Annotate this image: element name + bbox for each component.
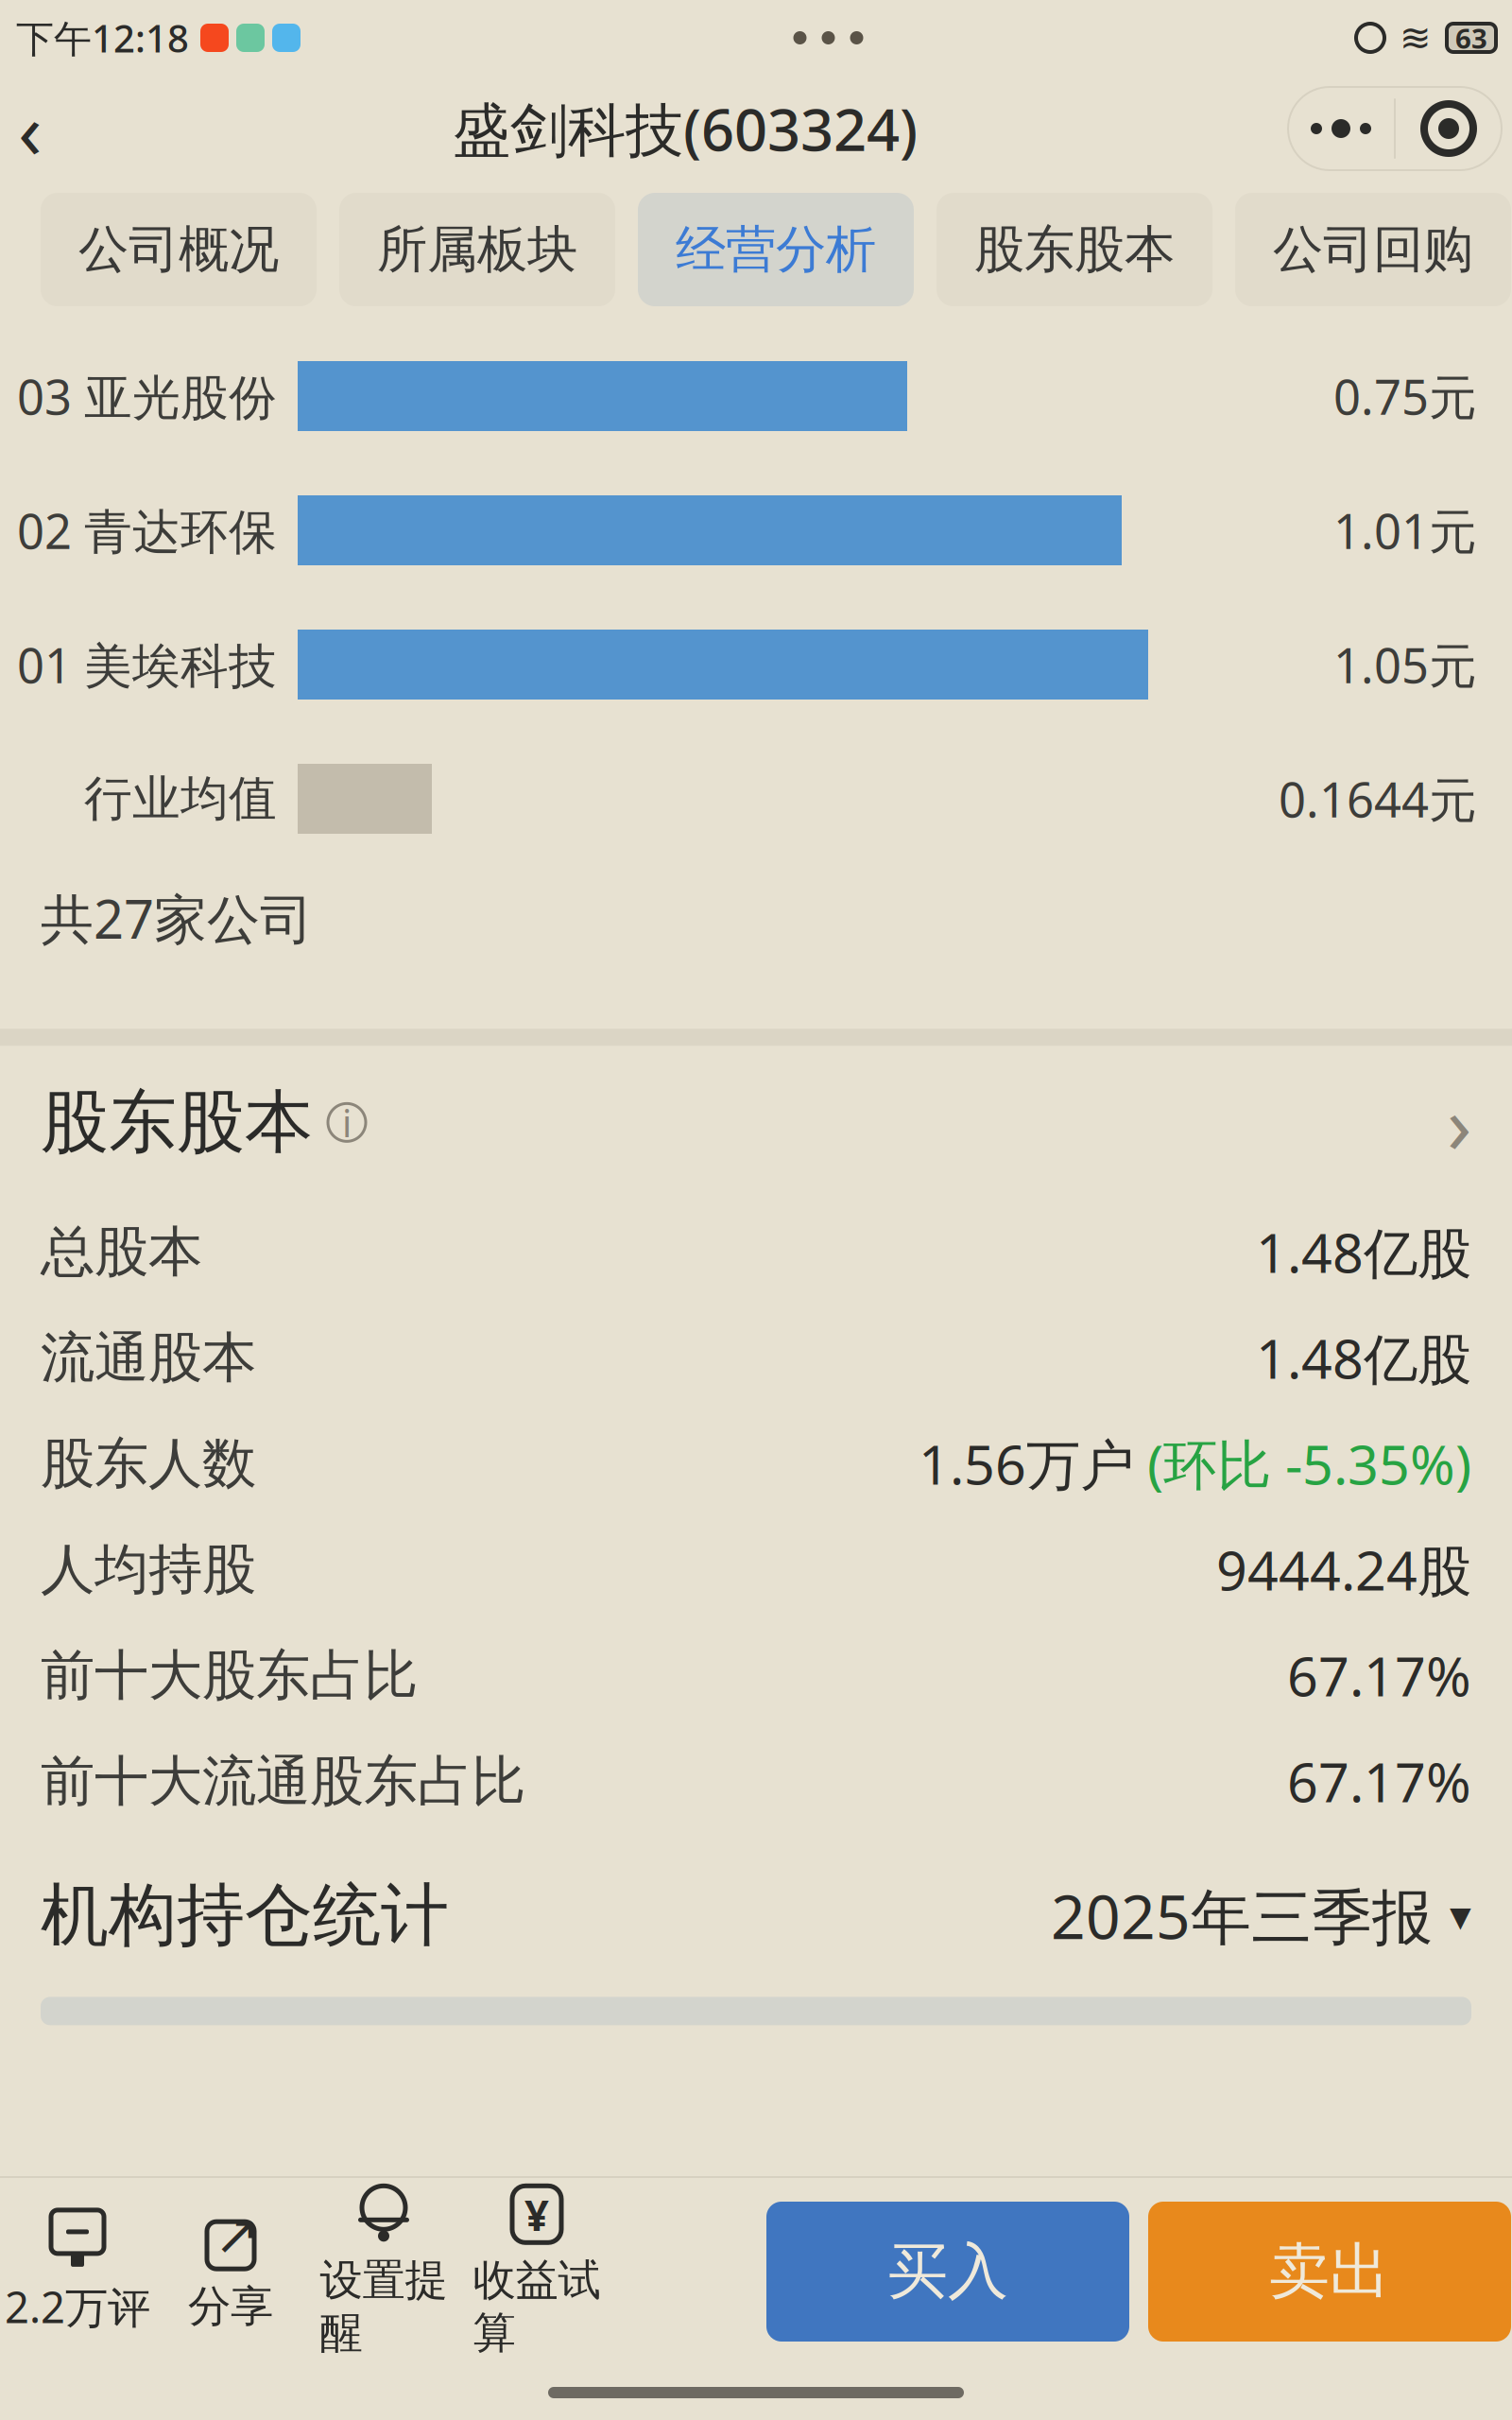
button[interactable]: ↗ bbox=[154, 2210, 307, 2333]
staticText: 0.1644元 bbox=[1279, 767, 1477, 831]
staticText: ≋ bbox=[1400, 16, 1432, 59]
staticText: ¥ bbox=[524, 2186, 549, 2243]
staticText: i bbox=[342, 1097, 352, 1148]
staticText: 总股本 bbox=[41, 1219, 202, 1285]
button[interactable]: 返回 bbox=[0, 77, 82, 181]
staticText: 9444.24股 bbox=[1216, 1534, 1471, 1606]
staticText: 67.17% bbox=[1287, 1745, 1471, 1817]
staticText: 1.48亿股 bbox=[1256, 1216, 1471, 1288]
staticText: 前十大股东占比 bbox=[41, 1642, 418, 1709]
staticText: 人均持股 bbox=[41, 1536, 256, 1603]
button[interactable]: 所属板块 bbox=[339, 193, 615, 306]
button[interactable]: 更多 bbox=[1288, 87, 1394, 170]
button[interactable]: 公司回购 bbox=[1235, 193, 1511, 306]
staticText: 1.01元 bbox=[1333, 499, 1477, 562]
staticText: 02 青达环保 bbox=[17, 499, 277, 562]
staticText: › bbox=[1447, 1069, 1471, 1176]
button[interactable]: 买入 bbox=[766, 2202, 1129, 2342]
staticText: 1.48亿股 bbox=[1256, 1322, 1471, 1394]
button[interactable]: ¥ bbox=[460, 2184, 613, 2359]
staticText: 1.05元 bbox=[1333, 633, 1477, 696]
staticText: 设置提醒 bbox=[320, 2254, 447, 2359]
staticText: 0.75元 bbox=[1333, 364, 1477, 428]
button[interactable]: 公司概况 bbox=[41, 193, 317, 306]
staticText: 流通股本 bbox=[41, 1325, 256, 1391]
staticText: 2025年三季报 bbox=[1051, 1875, 1433, 1956]
staticText: 行业均值 bbox=[84, 769, 277, 828]
button[interactable]: 卖出 bbox=[1148, 2202, 1511, 2342]
button[interactable]: 经营分析 bbox=[638, 193, 914, 306]
staticText: 共27家公司 bbox=[41, 883, 313, 953]
staticText: ↗ bbox=[214, 2203, 260, 2266]
staticText: 经营分析 bbox=[676, 219, 876, 280]
staticText: 股东股本 bbox=[974, 219, 1175, 280]
staticText: ▾ bbox=[1450, 1891, 1471, 1940]
staticText: 卖出 bbox=[1269, 2234, 1390, 2309]
staticText: 01 美埃科技 bbox=[17, 633, 277, 696]
button[interactable]: 2025年三季报 bbox=[1051, 1868, 1471, 1963]
staticText: 收益试算 bbox=[473, 2254, 601, 2359]
staticText: 下午12:18 bbox=[16, 13, 189, 63]
staticText: 买入 bbox=[887, 2234, 1008, 2309]
button[interactable]: 股东股本 bbox=[936, 193, 1212, 306]
button[interactable]: 2.2万评 bbox=[1, 2208, 154, 2335]
staticText: 分享 bbox=[188, 2280, 273, 2333]
staticText: 公司概况 bbox=[78, 219, 279, 280]
staticText: 1.56万户 bbox=[919, 1428, 1134, 1500]
staticText: 所属板块 bbox=[377, 219, 577, 280]
staticText: 机构持仓统计 bbox=[41, 1874, 449, 1957]
staticText: 股东股本 bbox=[41, 1081, 313, 1164]
staticText: (环比 -5.35%) bbox=[1147, 1428, 1471, 1500]
staticText: 2.2万评 bbox=[5, 2278, 150, 2335]
staticText: 前十大流通股东占比 bbox=[41, 1748, 525, 1815]
staticText: 股东人数 bbox=[41, 1430, 256, 1497]
button[interactable]: 设置提醒 bbox=[307, 2184, 460, 2359]
staticText: 公司回购 bbox=[1273, 219, 1473, 280]
staticText: ‹ bbox=[18, 77, 43, 180]
staticText: 67.17% bbox=[1287, 1639, 1471, 1711]
staticText: 03 亚光股份 bbox=[17, 364, 277, 428]
staticText: 63 bbox=[1455, 19, 1487, 56]
staticText: 盛剑科技(603324) bbox=[453, 90, 918, 167]
button[interactable]: 关闭 bbox=[1396, 87, 1502, 170]
button[interactable]: 股东股本 bbox=[0, 1046, 1512, 1199]
